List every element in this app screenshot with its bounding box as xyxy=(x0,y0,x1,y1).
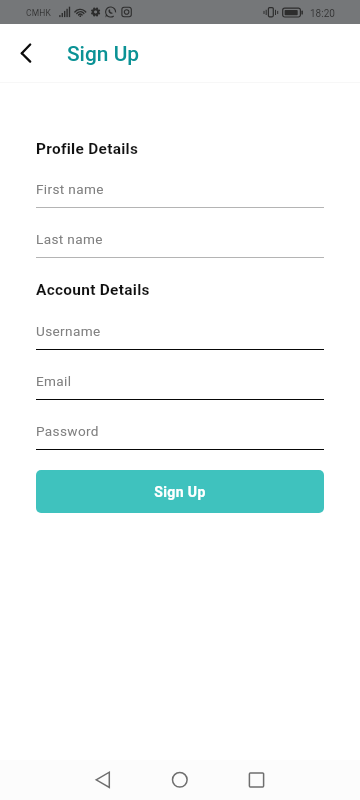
button[interactable]: Home xyxy=(158,758,202,800)
staticText: CMHK xyxy=(26,8,52,18)
button[interactable]: Back xyxy=(80,758,125,800)
staticText: Last name xyxy=(36,231,103,247)
button[interactable]: Sign Up xyxy=(36,470,324,513)
button[interactable]: Password xyxy=(0,422,360,454)
staticText: Password xyxy=(36,423,99,439)
button[interactable]: Last name xyxy=(0,230,360,262)
staticText: Email xyxy=(36,373,72,389)
staticText: Sign Up xyxy=(67,42,140,66)
button[interactable]: Email xyxy=(0,372,360,404)
button[interactable]: Recent apps xyxy=(234,758,278,800)
button[interactable]: Username xyxy=(0,322,360,354)
staticText: First name xyxy=(36,181,104,197)
staticText: 18:20 xyxy=(310,8,335,20)
staticText: Profile Details xyxy=(36,140,139,158)
staticText: Username xyxy=(36,323,101,339)
button[interactable]: First name xyxy=(0,180,360,212)
staticText: Account Details xyxy=(36,281,150,299)
button[interactable]: Back xyxy=(6,33,46,73)
staticText: Sign Up xyxy=(154,484,206,500)
